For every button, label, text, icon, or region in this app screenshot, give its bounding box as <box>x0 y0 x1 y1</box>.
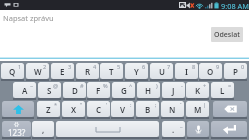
button[interactable]: L <box>211 82 234 98</box>
button[interactable]: Symbols <box>2 121 31 137</box>
staticText: K <box>195 85 201 96</box>
button[interactable]: U <box>150 63 173 79</box>
button[interactable]: F <box>87 82 110 98</box>
button[interactable]: Shift <box>2 101 34 117</box>
staticText: X <box>71 104 77 115</box>
staticText: 3 <box>68 63 72 71</box>
button[interactable]: G <box>112 82 135 98</box>
button[interactable]: Enter <box>211 121 247 137</box>
staticText: @ <box>53 82 59 90</box>
button[interactable]: E <box>51 63 74 79</box>
staticText: B <box>145 104 151 115</box>
staticText: 7 <box>167 63 171 71</box>
button[interactable]: J <box>162 82 185 98</box>
button[interactable]: S <box>38 82 61 98</box>
staticText: Napsat zprávu <box>3 13 54 23</box>
staticText: # <box>80 82 84 90</box>
staticText: M <box>194 104 202 115</box>
staticText: " <box>80 101 83 109</box>
staticText: . <box>172 124 175 135</box>
staticText: _ <box>180 121 183 129</box>
staticText: E <box>60 66 65 77</box>
staticText: G <box>121 85 127 96</box>
button[interactable]: X <box>62 101 85 117</box>
staticText: I <box>185 66 188 77</box>
staticText: 8 <box>192 63 196 71</box>
staticText: 0 <box>241 63 245 71</box>
staticText: | <box>203 101 207 109</box>
staticText: Odeslat <box>214 30 240 40</box>
staticText: * <box>54 101 58 109</box>
staticText: 6 <box>142 63 146 71</box>
button[interactable]: T <box>100 63 123 79</box>
staticText: L <box>220 85 225 96</box>
button[interactable]: W <box>26 63 49 79</box>
button[interactable]: Q <box>1 63 24 79</box>
staticText: ~ <box>30 82 34 90</box>
button[interactable]: D <box>63 82 86 98</box>
staticText: Y <box>134 66 139 77</box>
button[interactable]: P <box>224 63 247 79</box>
staticText: ) <box>156 82 158 90</box>
staticText: P <box>233 66 238 77</box>
staticText: 123? <box>8 127 26 137</box>
button[interactable]: Z <box>37 101 60 117</box>
staticText: 5 <box>117 63 121 71</box>
button[interactable]: K <box>186 82 209 98</box>
button[interactable]: N <box>161 101 184 117</box>
staticText: 2 <box>43 63 47 71</box>
staticText: A <box>22 85 28 96</box>
staticText: D <box>72 85 78 96</box>
staticText: F <box>96 85 101 96</box>
staticText: = <box>228 82 232 90</box>
button[interactable]: V <box>111 101 134 117</box>
staticText: J <box>172 85 175 96</box>
button[interactable]: , <box>32 121 54 137</box>
staticText: ; <box>155 101 157 109</box>
staticText: R <box>85 66 91 77</box>
button[interactable]: B <box>136 101 159 117</box>
staticText: V <box>120 104 126 115</box>
staticText: ' <box>106 101 108 109</box>
button[interactable]: H <box>137 82 160 98</box>
staticText: S <box>47 85 52 96</box>
staticText: 9 <box>216 63 220 71</box>
staticText: - <box>181 82 183 90</box>
staticText: O <box>207 66 214 77</box>
button[interactable]: Space <box>56 121 159 137</box>
button[interactable]: Voice input <box>187 121 209 137</box>
staticText: C <box>96 104 102 115</box>
button[interactable]: A <box>13 82 36 98</box>
staticText: + <box>203 82 207 90</box>
staticText: : <box>130 101 132 109</box>
button[interactable]: Y <box>125 63 148 79</box>
button[interactable]: . <box>162 121 185 137</box>
button[interactable]: C <box>87 101 110 117</box>
staticText: U <box>159 66 165 77</box>
staticText: ^ <box>129 82 133 90</box>
staticText: T <box>109 66 114 77</box>
button[interactable]: M <box>186 101 209 117</box>
button[interactable]: Odeslat <box>211 27 243 42</box>
staticText: ` <box>180 101 182 109</box>
staticText: Z <box>46 104 51 115</box>
button[interactable]: I <box>175 63 198 79</box>
staticText: N <box>169 104 176 115</box>
staticText: 1 <box>18 63 22 71</box>
button[interactable]: O <box>199 63 222 79</box>
staticText: % <box>103 82 108 90</box>
button[interactable]: R <box>76 63 99 79</box>
staticText: , <box>42 124 45 135</box>
staticText: 9:08 AM <box>221 1 249 11</box>
button[interactable]: Backspace <box>213 101 247 117</box>
staticText: Q <box>9 66 16 77</box>
staticText: 4 <box>93 63 97 71</box>
staticText: W <box>34 66 42 77</box>
staticText: H <box>145 85 152 96</box>
